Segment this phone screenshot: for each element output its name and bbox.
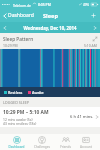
button[interactable]: Account	[79, 135, 93, 150]
button[interactable]: Awake	[28, 90, 44, 95]
staticText: 5:10 AM	[84, 43, 97, 48]
staticText: 12 mins awake (5x)	[3, 117, 33, 121]
staticText: Sleep	[43, 12, 58, 20]
button[interactable]: Dashboard	[0, 9, 38, 22]
staticText: Restless	[8, 90, 23, 95]
staticText: Friends	[60, 145, 71, 149]
button[interactable]: Next day	[90, 22, 100, 33]
staticText: 8:05 PM	[38, 2, 51, 7]
staticText: Challenges	[34, 145, 50, 149]
staticText: 6 h 41 mins.	[70, 114, 94, 120]
staticText: Awake	[32, 90, 44, 95]
button[interactable]: Expand chart	[91, 35, 99, 43]
button[interactable]: 10:29 PM – 5:10 AM	[0, 107, 100, 127]
staticText: LOGGED SLEEP	[3, 100, 30, 105]
staticText: 10:29 PM – 5:10 AM	[3, 109, 49, 116]
staticText: 49%	[83, 3, 90, 7]
button[interactable]: Challenges	[33, 135, 51, 150]
button[interactable]: Previous day	[0, 22, 10, 33]
button[interactable]: Friends	[59, 135, 72, 150]
staticText: Wednesday, Dec 10, 2014	[10, 25, 90, 31]
button[interactable]: Add sleep log	[87, 9, 100, 22]
staticText: Sleep Pattern	[3, 36, 91, 42]
staticText: Account	[80, 145, 92, 149]
button[interactable]: Restless	[4, 90, 23, 95]
button[interactable]: Dashboard	[7, 135, 26, 150]
staticText: Dashboard	[8, 145, 25, 149]
staticText: Telekom.de	[13, 3, 31, 7]
staticText: 43 mins restless (18x)	[3, 121, 37, 125]
staticText: Dashboard	[8, 12, 34, 19]
staticText: 10:29 PM	[3, 43, 18, 48]
